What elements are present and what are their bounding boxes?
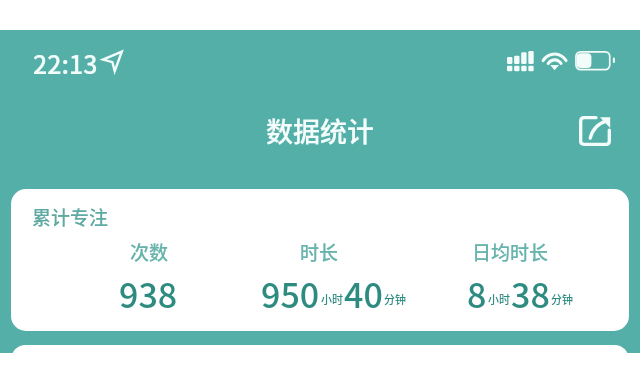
staticText: 22:13 bbox=[33, 45, 98, 81]
staticText: 40 bbox=[344, 269, 383, 318]
staticText: 38 bbox=[511, 269, 550, 318]
staticText: 分钟 bbox=[551, 291, 573, 307]
staticText: 数据统计 bbox=[266, 111, 374, 150]
staticText: 小时 bbox=[321, 291, 343, 307]
staticText: 日均时长 bbox=[472, 238, 549, 266]
staticText: 8 bbox=[467, 269, 487, 318]
staticText: 次数 bbox=[130, 238, 169, 266]
staticText: 小时 bbox=[488, 291, 510, 307]
staticText: 累计专注 bbox=[32, 203, 109, 231]
button[interactable]: Share bbox=[573, 109, 617, 153]
staticText: 分钟 bbox=[384, 291, 406, 307]
staticText: 938 bbox=[119, 269, 178, 318]
staticText: 时长 bbox=[300, 238, 339, 266]
button[interactable] bbox=[11, 345, 629, 374]
staticText: 950 bbox=[261, 269, 320, 318]
button[interactable]: 累计专注 bbox=[11, 189, 629, 331]
